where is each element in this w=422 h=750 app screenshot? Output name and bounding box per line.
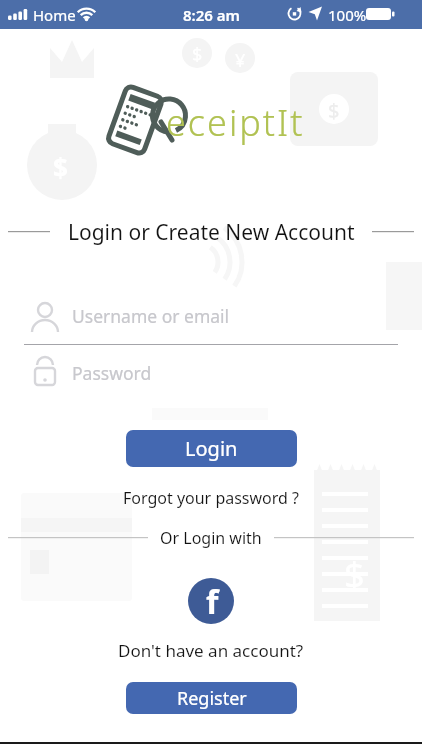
button[interactable]: Password (30, 352, 398, 394)
staticText: $ (344, 550, 365, 599)
staticText: Register (177, 686, 247, 711)
staticText: f (206, 580, 219, 624)
staticText: Home (33, 5, 76, 25)
staticText: $ (192, 42, 203, 67)
button[interactable]: Username or email (30, 296, 398, 336)
staticText: Login (185, 435, 238, 462)
staticText: Don't have an account? (118, 639, 304, 661)
button[interactable]: f (188, 578, 234, 624)
staticText: 100% (328, 5, 367, 25)
staticText: Or Login with (160, 527, 262, 548)
staticText: eceiptIt (166, 98, 305, 147)
staticText: Password (72, 361, 152, 385)
button[interactable]: Forgot your password ? (123, 487, 300, 509)
staticText: 8:26 am (183, 5, 240, 25)
button[interactable]: Login (126, 430, 297, 467)
staticText: $ (328, 97, 340, 124)
staticText: Username or email (72, 304, 230, 328)
staticText: Login or Create New Account (68, 218, 355, 246)
button[interactable]: Register (126, 682, 297, 714)
staticText: ¥ (235, 48, 246, 73)
staticText: $ (53, 150, 68, 185)
